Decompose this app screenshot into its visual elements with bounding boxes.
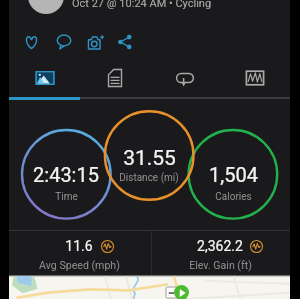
staticText: Distance (mi) bbox=[119, 172, 179, 184]
button[interactable] bbox=[150, 231, 290, 275]
staticText: 2:43:15 bbox=[33, 163, 99, 186]
button[interactable]: Add photo bbox=[81, 28, 109, 56]
button[interactable]: Overview tab bbox=[9, 58, 80, 97]
staticText: 31.55 bbox=[123, 146, 176, 171]
button[interactable]: Play route animation bbox=[174, 285, 189, 299]
staticText: Oct 27 @ 10:24 AM • Cycling bbox=[72, 0, 212, 10]
button[interactable]: Profile photo bbox=[28, 0, 64, 14]
button[interactable] bbox=[189, 131, 277, 219]
button[interactable]: Charts tab bbox=[220, 58, 290, 97]
button[interactable] bbox=[22, 131, 110, 219]
staticText: Time bbox=[55, 191, 78, 203]
staticText: 2,362.2 bbox=[197, 238, 243, 254]
staticText: Elev. Gain (ft) bbox=[189, 259, 252, 271]
staticText: 1,504 bbox=[209, 163, 258, 186]
button[interactable]: Laps tab bbox=[150, 58, 220, 97]
button[interactable]: Like bbox=[17, 28, 45, 56]
button[interactable]: Details tab bbox=[80, 58, 150, 97]
button[interactable]: Comment bbox=[50, 28, 78, 56]
staticText: Avg Speed (mph) bbox=[39, 259, 120, 271]
button[interactable] bbox=[9, 231, 149, 275]
button[interactable] bbox=[105, 113, 193, 201]
staticText: 11.6 bbox=[65, 238, 93, 254]
staticText: Calories bbox=[215, 191, 252, 203]
button[interactable]: Share bbox=[111, 28, 139, 56]
